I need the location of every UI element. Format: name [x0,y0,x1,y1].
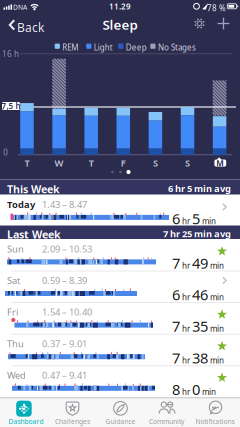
staticText: Light [94,42,113,53]
staticText: REM [62,42,78,53]
staticText: F [121,157,126,169]
button[interactable]: Challenges [50,397,94,427]
staticText: Wed [7,369,26,381]
staticText: Fri [7,306,18,318]
staticText: 7 hr 25 min avg [163,228,231,240]
staticText: Thu [7,337,24,350]
button[interactable]: Today [0,194,240,225]
staticText: 11.29 [109,1,131,12]
staticText: 1.43 – 8.47 [42,198,87,210]
staticText: Last Week [7,227,61,241]
staticText: Sun [7,243,24,255]
button[interactable]: Dashboard [2,397,46,427]
staticText: 7,5 h [1,101,20,111]
staticText: 0 [3,147,8,158]
staticText: 6 hr 5 min avg [168,182,231,195]
button[interactable]: Community [144,397,188,427]
staticText: DNA [13,3,27,12]
button[interactable]: Settings [191,15,207,31]
staticText: 0.59 – 8.39 [42,274,87,287]
staticText: 7 hr 35 min [172,316,224,336]
staticText: S [185,157,190,169]
staticText: Community [149,417,184,426]
staticText: Deep [126,42,147,53]
button[interactable]: Fri [0,302,240,334]
staticText: 78 % [207,3,226,13]
button[interactable]: Guidance [98,397,142,427]
staticText: 0.37 – 9.01 [42,337,87,350]
staticText: S [153,157,158,169]
staticText: Notifications [195,417,234,426]
button[interactable]: Thu [0,334,240,365]
staticText: 6 hr 46 min [172,285,224,304]
button[interactable]: Wed [0,365,240,397]
staticText: 7 hr 38 min [172,348,224,367]
staticText: Sleep [102,16,137,33]
staticText: 8 hr 0 min [172,380,216,399]
staticText: 6 hr 5 min [172,209,216,228]
staticText: T [24,157,29,169]
staticText: 16 h [2,48,19,59]
staticText: Back [17,19,44,35]
staticText: 1.54 – 10.40 [42,306,92,318]
staticText: W [55,157,64,169]
button[interactable]: Sun [0,239,240,271]
staticText: 2.09 – 10.53 [42,243,92,255]
staticText: M [216,158,224,168]
button[interactable]: Notifications [193,397,237,427]
staticText: T [89,157,94,169]
staticText: Sat [7,274,20,287]
button[interactable]: Sat [0,271,240,302]
staticText: 7 hr 49 min [172,253,224,273]
staticText: Guidance [105,417,135,426]
staticText: 0.47 – 9.41 [42,369,87,381]
staticText: Today [7,198,35,210]
staticText: This Week [7,182,60,196]
staticText: Challenges [55,417,90,426]
staticText: No Stages [158,42,196,53]
button[interactable]: Add [215,15,231,31]
button[interactable]: Back [6,16,44,34]
staticText: Dashboard [8,417,43,426]
